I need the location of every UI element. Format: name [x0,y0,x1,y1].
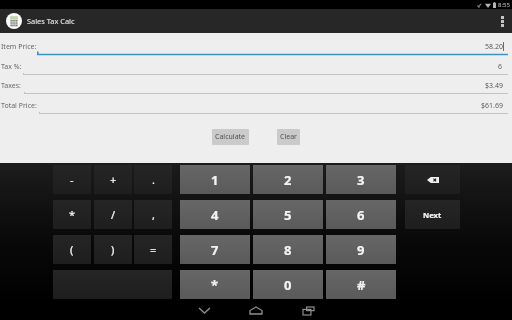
staticText: Taxes: [1,81,21,91]
staticText: # [357,276,366,294]
staticText: Item Price: [1,42,37,52]
staticText: = [150,242,157,257]
button[interactable]: , [134,200,172,229]
staticText: ( [70,242,74,257]
staticText: 2 [284,171,292,189]
button[interactable]: 9 [326,235,396,264]
staticText: $3.49 [485,81,503,91]
staticText: 6 [357,206,365,224]
staticText: - [70,172,74,187]
button[interactable]: Clear [277,129,300,145]
button[interactable]: Recent apps [282,301,334,320]
staticText: 4 [211,206,219,224]
staticText: Next [423,210,442,220]
staticText: * [69,207,76,222]
button[interactable]: Calculate [212,129,249,145]
staticText: * [211,276,219,294]
button[interactable]: 2 [253,165,323,194]
button[interactable]: = [134,235,172,264]
button[interactable]: 4 [180,200,250,229]
button[interactable]: Hide keyboard [178,301,230,320]
staticText: 9 [357,241,365,259]
staticText: + [110,172,117,187]
button[interactable]: # [326,270,396,299]
button[interactable]: ) [94,235,132,264]
button[interactable]: 5 [253,200,323,229]
button[interactable]: 1 [180,165,250,194]
button[interactable]: Home [230,301,282,320]
staticText: 3 [357,171,365,189]
button[interactable]: 3 [326,165,396,194]
staticText: / [111,207,116,222]
button[interactable]: - [53,165,91,194]
staticText: . [152,172,155,187]
button[interactable]: / [94,200,132,229]
staticText: 58.20 [485,42,503,52]
staticText: Tax %: [1,62,22,72]
button[interactable]: 8 [253,235,323,264]
staticText: 5 [284,206,292,224]
button[interactable]: $61.69 [39,98,508,115]
button[interactable]: 7 [180,235,250,264]
button[interactable]: . [134,165,172,194]
staticText: 8:55 [498,1,510,9]
staticText: Calculate [215,132,246,142]
button[interactable]: $3.49 [24,78,508,95]
button[interactable]: Backspace [405,165,460,194]
button[interactable]: 6 [23,59,508,76]
button[interactable]: 0 [253,270,323,299]
staticText: Clear [280,132,297,142]
staticText: 8 [284,241,292,259]
button[interactable]: 6 [326,200,396,229]
button[interactable]: 58.20 [37,39,508,56]
staticText: Sales Tax Calc [27,16,75,26]
staticText: $61.69 [481,101,503,111]
staticText: 0 [284,276,292,294]
staticText: , [152,207,155,222]
staticText: Total Price: [1,101,37,111]
button[interactable]: More options [492,9,512,33]
button[interactable]: * [180,270,250,299]
staticText: 6 [498,62,503,72]
button[interactable]: * [53,200,91,229]
staticText: 7 [211,241,219,259]
staticText: 1 [211,171,219,189]
button[interactable]: + [94,165,132,194]
button[interactable]: ( [53,235,91,264]
staticText: ) [111,242,115,257]
button[interactable]: Next [405,200,460,229]
